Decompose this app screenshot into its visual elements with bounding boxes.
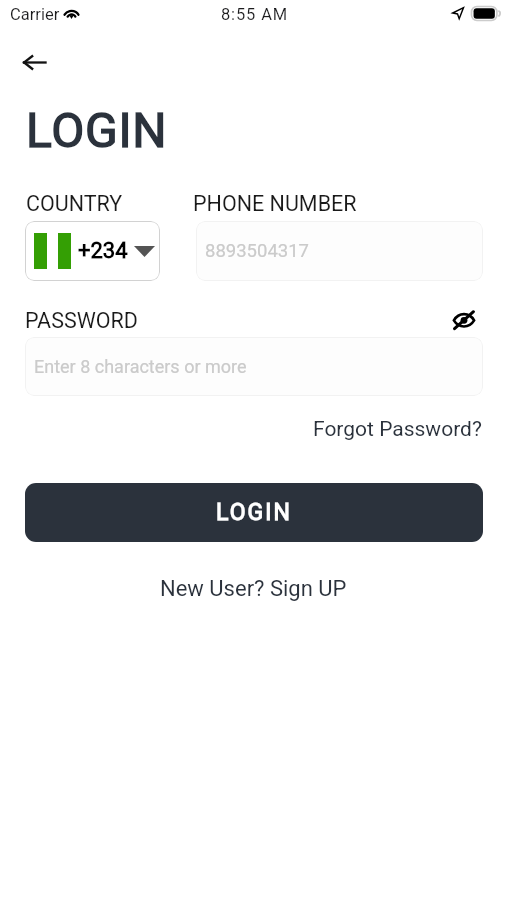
staticText: COUNTRY: [26, 191, 123, 216]
staticText: Forgot Password?: [313, 417, 482, 442]
staticText: LOGIN: [26, 102, 168, 158]
button[interactable]: 8893504317: [196, 221, 483, 281]
staticText: 8:55 AM: [221, 5, 289, 24]
button[interactable]: Forgot Password?: [305, 413, 490, 446]
button[interactable]: LOGIN: [25, 483, 483, 542]
staticText: +234: [78, 238, 128, 264]
staticText: Enter 8 characters or more: [34, 356, 247, 377]
staticText: 8893504317: [205, 240, 309, 262]
staticText: PASSWORD: [25, 308, 138, 333]
button[interactable]: Back: [11, 39, 57, 85]
button[interactable]: Enter 8 characters or more: [25, 337, 483, 396]
button[interactable]: Select country code: [25, 221, 160, 281]
staticText: Carrier: [10, 5, 60, 24]
button[interactable]: Show password: [447, 303, 481, 337]
staticText: PHONE NUMBER: [193, 191, 357, 216]
staticText: LOGIN: [216, 499, 292, 526]
staticText: New User? Sign UP: [160, 576, 347, 602]
button[interactable]: New User? Sign UP: [150, 571, 357, 607]
